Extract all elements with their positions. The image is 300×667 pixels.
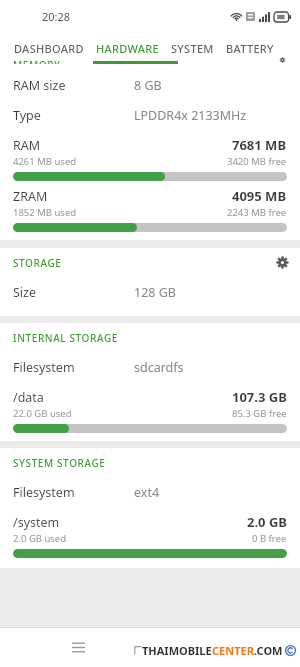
- button[interactable]: DASHBOARD: [8, 41, 90, 56]
- staticText: DASHBOARD: [14, 41, 84, 56]
- button[interactable]: /system: [0, 507, 300, 558]
- staticText: 8 GB: [134, 77, 162, 94]
- staticText: 4095 MB: [232, 187, 287, 205]
- staticText: Type: [13, 107, 41, 124]
- staticText: 85.3 GB free: [232, 407, 287, 420]
- staticText: 2.0 GB: [247, 513, 287, 531]
- staticText: ext4: [134, 484, 160, 501]
- staticText: 4261 MB used: [13, 155, 77, 168]
- button[interactable]: HARDWARE: [90, 41, 165, 56]
- button[interactable]: STORAGE: [0, 248, 300, 277]
- staticText: CENTER: [212, 643, 254, 658]
- button[interactable]: SYSTEM STORAGE: [0, 448, 300, 477]
- button[interactable]: RAM size: [0, 70, 300, 100]
- staticText: MEMORY: [13, 58, 61, 64]
- button[interactable]: ZRAM: [0, 181, 300, 232]
- staticText: 2243 MB free: [227, 206, 287, 219]
- button[interactable]: Memory settings: [276, 57, 289, 63]
- staticText: RAM size: [13, 77, 66, 94]
- staticText: 107.3 GB: [232, 388, 287, 406]
- staticText: 7681 MB: [232, 136, 287, 154]
- staticText: 128 GB: [134, 284, 176, 301]
- button[interactable]: RAM: [0, 130, 300, 181]
- staticText: STORAGE: [13, 256, 62, 270]
- staticText: /data: [13, 389, 44, 406]
- button[interactable]: Type: [0, 100, 300, 130]
- staticText: Filesystem: [13, 484, 75, 501]
- button[interactable]: Filesystem: [0, 352, 300, 382]
- staticText: BATTERY: [226, 41, 274, 56]
- staticText: SYSTEM: [171, 41, 214, 56]
- button[interactable]: Filesystem: [0, 477, 300, 507]
- staticText: 22.0 GB used: [13, 407, 72, 420]
- button[interactable]: Size: [0, 277, 300, 307]
- staticText: 2.0 GB used: [13, 532, 67, 545]
- button[interactable]: BATTERY: [220, 41, 280, 56]
- button[interactable]: INTERNAL STORAGE: [0, 323, 300, 352]
- button[interactable]: /data: [0, 382, 300, 433]
- staticText: .COM: [254, 643, 283, 658]
- staticText: ZRAM: [13, 188, 48, 205]
- staticText: 1852 MB used: [13, 206, 77, 219]
- button[interactable]: SYSTEM: [165, 41, 220, 56]
- staticText: Filesystem: [13, 359, 75, 376]
- staticText: 20:28: [42, 9, 71, 24]
- staticText: Size: [13, 284, 37, 301]
- staticText: LPDDR4x 2133MHz: [134, 107, 247, 124]
- staticText: SYSTEM STORAGE: [13, 456, 106, 470]
- staticText: RAM: [13, 137, 41, 154]
- button[interactable]: Menu: [63, 632, 93, 662]
- staticText: /system: [13, 514, 60, 531]
- staticText: HARDWARE: [96, 41, 159, 56]
- staticText: 0 B free: [252, 532, 287, 545]
- staticText: sdcardfs: [134, 359, 184, 376]
- staticText: THAIMOBILE: [142, 643, 212, 658]
- staticText: 3420 MB free: [227, 155, 287, 168]
- button[interactable]: Storage settings: [276, 256, 289, 269]
- staticText: INTERNAL STORAGE: [13, 331, 118, 345]
